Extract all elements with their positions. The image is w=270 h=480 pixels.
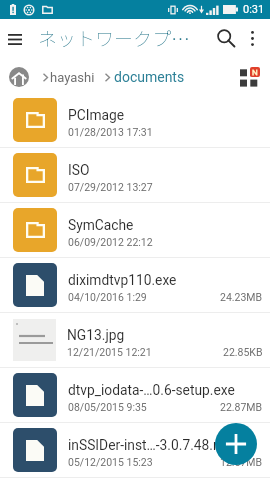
staticText: 22.87MB bbox=[220, 401, 263, 413]
staticText: 04/10/2016 1:29 bbox=[68, 291, 147, 303]
button[interactable]: NG13.jpg bbox=[0, 313, 270, 368]
button[interactable]: inSSIDer-inst…-3.0.7.48.msi bbox=[0, 423, 270, 478]
button[interactable]: Add bbox=[215, 423, 257, 465]
button[interactable]: Search bbox=[212, 19, 240, 57]
staticText: PCImage bbox=[68, 107, 125, 123]
button[interactable]: SymCache bbox=[0, 203, 270, 258]
button[interactable]: More options bbox=[240, 19, 264, 57]
button[interactable]: ISO bbox=[0, 148, 270, 203]
staticText: 24.23MB bbox=[220, 291, 263, 303]
staticText: dtvp_iodata-…0.6-setup.exe bbox=[68, 382, 235, 398]
staticText: 01/28/2013 17:31 bbox=[68, 126, 153, 138]
staticText: N bbox=[252, 68, 258, 77]
button[interactable]: Home bbox=[9, 67, 29, 87]
button[interactable]: PCImage bbox=[0, 93, 270, 148]
button[interactable]: documents bbox=[114, 69, 185, 85]
button[interactable]: diximdtvp110.exe bbox=[0, 258, 270, 313]
staticText: diximdtvp110.exe bbox=[68, 272, 177, 288]
button[interactable]: Grid view bbox=[235, 59, 265, 95]
staticText: 07/29/2012 13:27 bbox=[68, 181, 153, 193]
staticText: 12.57MB bbox=[220, 456, 263, 468]
staticText: ネットワークプ… bbox=[38, 24, 212, 52]
staticText: 22.85KB bbox=[223, 346, 263, 358]
staticText: inSSIDer-inst…-3.0.7.48.msi bbox=[68, 437, 236, 453]
staticText: 05/12/2015 15:23 bbox=[68, 456, 153, 468]
staticText: 08/05/2015 9:35 bbox=[68, 401, 147, 413]
button[interactable]: dtvp_iodata-…0.6-setup.exe bbox=[0, 368, 270, 423]
staticText: 06/09/2012 22:12 bbox=[68, 236, 153, 248]
button[interactable]: hayashi bbox=[50, 70, 95, 85]
staticText: 12/21/2015 12:21 bbox=[67, 346, 152, 358]
staticText: 0:31 bbox=[243, 3, 265, 16]
button[interactable]: Menu bbox=[0, 19, 30, 57]
staticText: ISO bbox=[68, 162, 90, 178]
staticText: SymCache bbox=[68, 217, 134, 233]
staticText: NG13.jpg bbox=[67, 327, 125, 343]
